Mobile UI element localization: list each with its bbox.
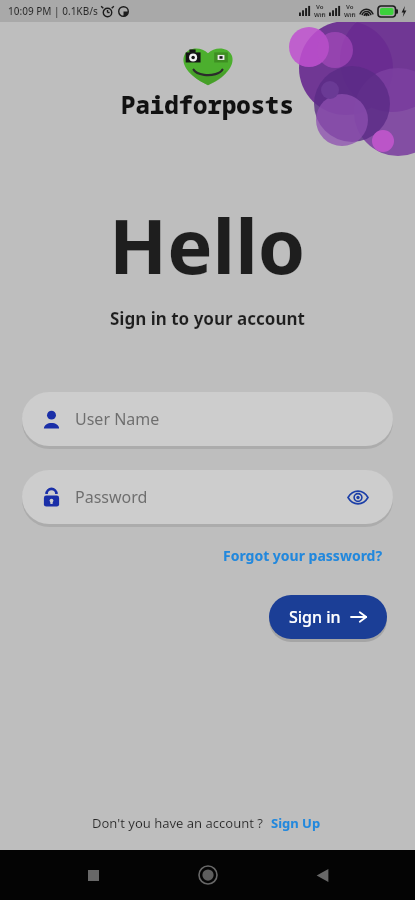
- staticText: Forgot your password?: [223, 546, 383, 565]
- staticText: Vo: [346, 3, 354, 11]
- button[interactable]: User Name: [22, 392, 393, 446]
- button[interactable]: Password: [22, 470, 393, 524]
- staticText: Wifi: [314, 11, 326, 19]
- staticText: Password: [75, 486, 343, 508]
- staticText: Sign Up: [271, 814, 321, 832]
- staticText: Sign in: [289, 606, 341, 628]
- button[interactable]: Recents: [71, 853, 115, 897]
- staticText: Sign in to your account: [110, 307, 305, 330]
- button[interactable]: Forgot your password?: [221, 544, 385, 567]
- staticText: Hello: [109, 193, 306, 297]
- button[interactable]: Sign in: [269, 595, 387, 639]
- staticText: 10:09 PM | 0.1KB/s: [8, 4, 98, 18]
- staticText: Don't you have an account ?: [92, 814, 263, 832]
- button[interactable]: Home: [186, 853, 230, 897]
- staticText: Wifi: [344, 11, 356, 19]
- staticText: User Name: [75, 408, 373, 430]
- button[interactable]: Back: [300, 853, 344, 897]
- button[interactable]: Sign Up: [269, 812, 323, 834]
- staticText: Vo: [316, 3, 324, 11]
- button[interactable]: Show password: [343, 482, 373, 512]
- staticText: Paidforposts: [121, 88, 294, 121]
